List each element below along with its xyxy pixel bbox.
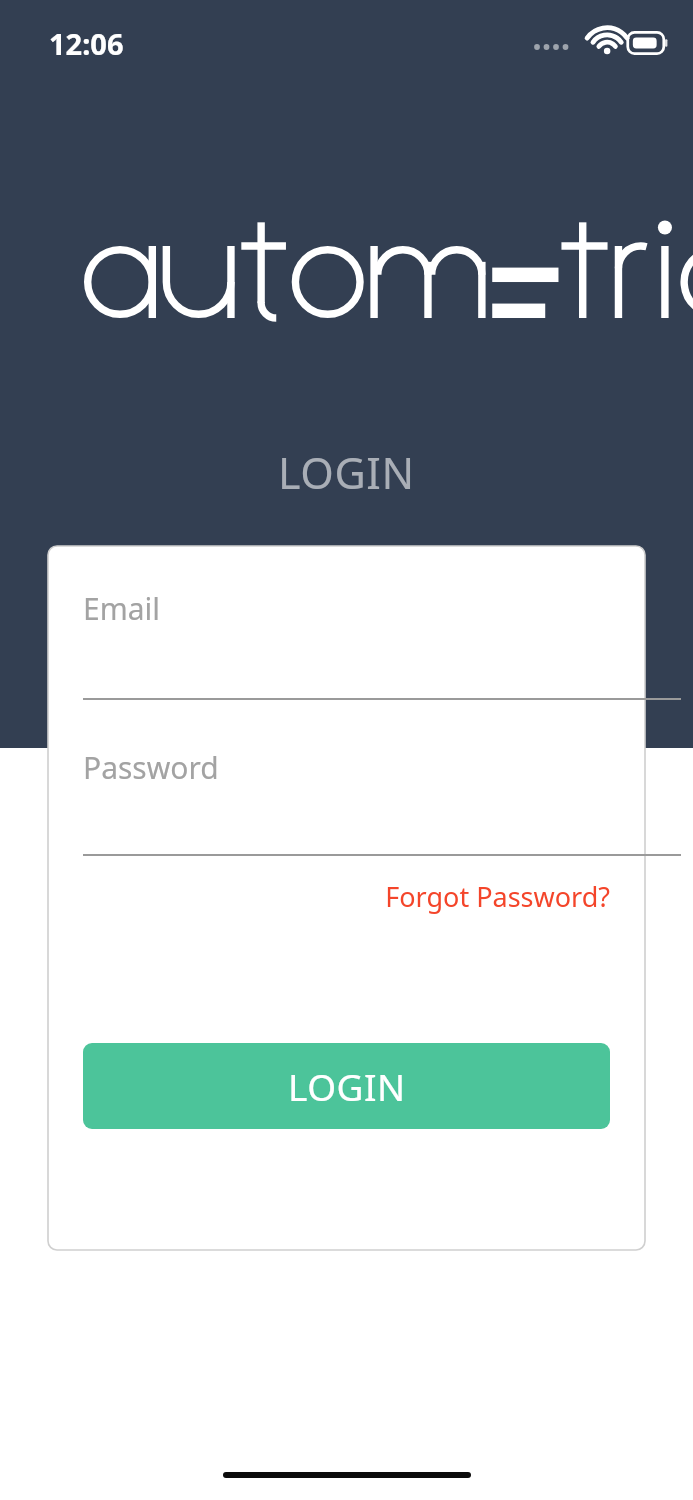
staticText: Forgot Password?: [385, 878, 610, 915]
staticText: 12:06: [49, 24, 124, 63]
staticText: Password: [83, 747, 219, 788]
button[interactable]: LOGIN: [83, 1043, 610, 1129]
other: Home indicator: [223, 1472, 471, 1478]
staticText: LOGIN: [278, 443, 415, 502]
staticText: Email: [83, 588, 161, 629]
button[interactable]: Forgot Password?: [360, 878, 610, 915]
staticText: LOGIN: [288, 1061, 406, 1111]
